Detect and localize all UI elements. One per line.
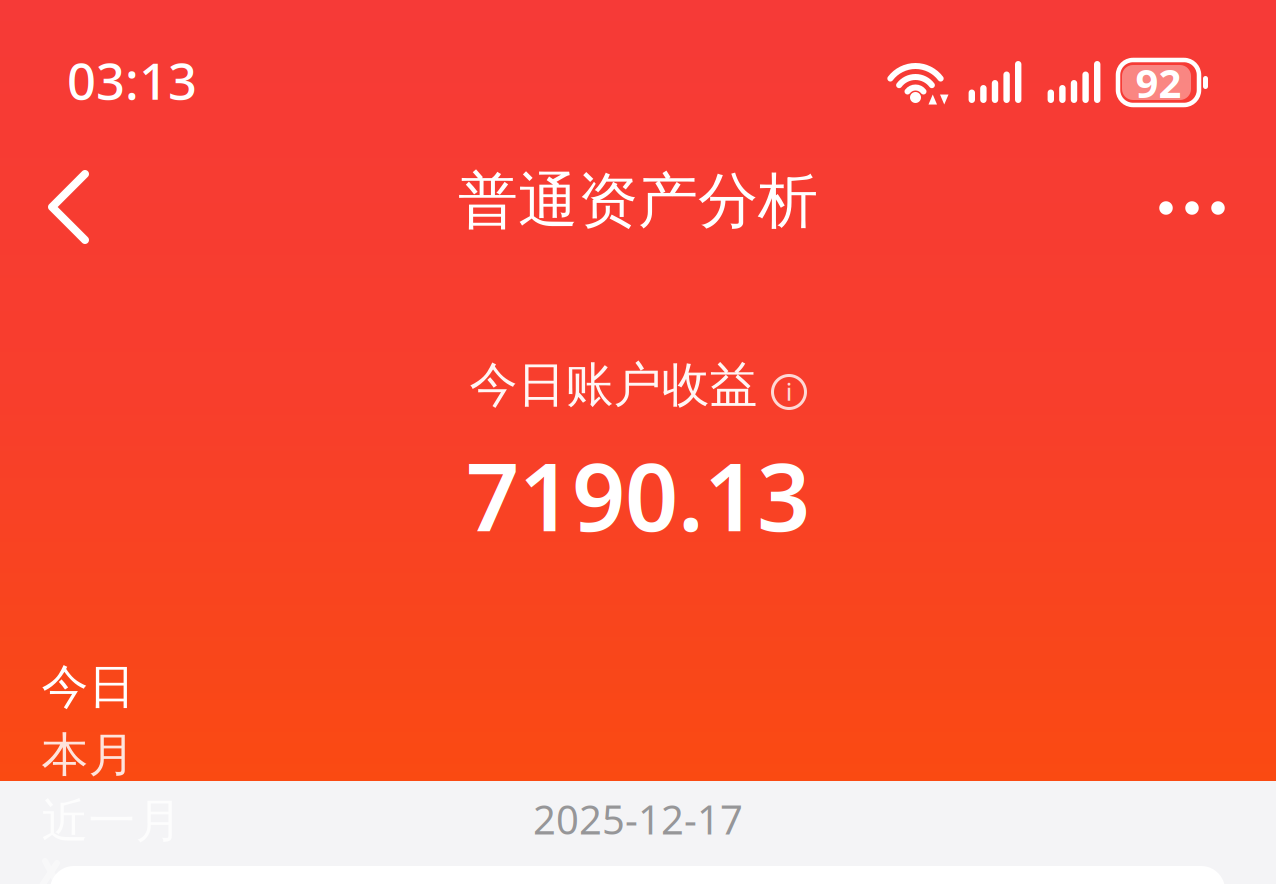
staticText: i — [786, 377, 792, 407]
button[interactable]: More — [1142, 178, 1242, 238]
staticText: 2025-12-17 — [533, 792, 743, 845]
staticText: 今日 — [41, 658, 135, 716]
staticText: 今日账户收益 — [469, 355, 757, 414]
button[interactable]: 本月 — [41, 726, 135, 784]
button[interactable]: Info — [771, 367, 806, 402]
button[interactable]: 今日 — [41, 658, 135, 716]
staticText: 本月 — [41, 726, 135, 784]
button[interactable]: Back — [38, 162, 98, 252]
staticText: 92 — [1135, 56, 1181, 109]
staticText: 7190.13 — [466, 433, 810, 557]
staticText: 普通资产分析 — [458, 164, 818, 238]
staticText: 03:13 — [67, 46, 197, 114]
